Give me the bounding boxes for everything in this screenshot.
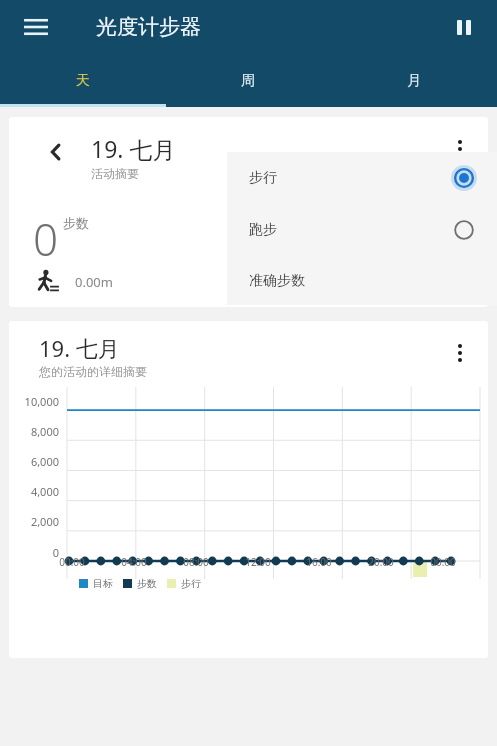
button[interactable]: More options [440, 129, 480, 169]
staticText: 16:00 [294, 555, 344, 569]
button[interactable]: 步行 [227, 152, 497, 204]
staticText: 天 [76, 72, 90, 90]
staticText: 19. 七月 [39, 333, 120, 363]
staticText: 4,000 [9, 484, 59, 499]
staticText: 光度计步器 [96, 14, 201, 40]
staticText: 20:00 [356, 555, 406, 569]
staticText: 活动摘要 [91, 166, 139, 181]
staticText: 0.00m [75, 273, 113, 291]
staticText: 04:00 [109, 555, 159, 569]
button[interactable]: Chart options [440, 333, 480, 373]
staticText: 您的活动的详细摘要 [39, 364, 147, 379]
staticText: 步行 [249, 169, 277, 187]
button[interactable]: 周 [165, 54, 331, 107]
button[interactable]: Previous day [39, 135, 73, 169]
staticText: 12:00 [233, 555, 283, 569]
staticText: 步数 [63, 215, 89, 231]
staticText: 2,000 [9, 514, 59, 529]
button[interactable]: 跑步 [227, 204, 497, 256]
button[interactable]: 准确步数 [227, 256, 497, 305]
staticText: 准确步数 [249, 272, 305, 290]
staticText: 周 [241, 72, 255, 90]
staticText: 6,000 [9, 454, 59, 469]
staticText: 10,000 [9, 394, 59, 409]
staticText: 8,000 [9, 424, 59, 439]
staticText: 月 [407, 72, 421, 90]
button[interactable]: 月 [331, 54, 497, 107]
staticText: 00:00 [47, 555, 97, 569]
staticText: 08:00 [171, 555, 221, 569]
button[interactable]: Pause [443, 6, 485, 48]
button[interactable]: Open navigation menu [14, 5, 58, 49]
staticText: 00:00 [418, 555, 468, 569]
staticText: 步数 [137, 577, 157, 590]
button[interactable]: 天 [0, 54, 165, 107]
staticText: 跑步 [249, 221, 277, 239]
staticText: 目标 [93, 577, 113, 590]
staticText: 步行 [181, 577, 201, 590]
staticText: 0 [9, 545, 59, 560]
staticText: 19. 七月 [91, 133, 176, 164]
staticText: 0 [33, 209, 59, 269]
